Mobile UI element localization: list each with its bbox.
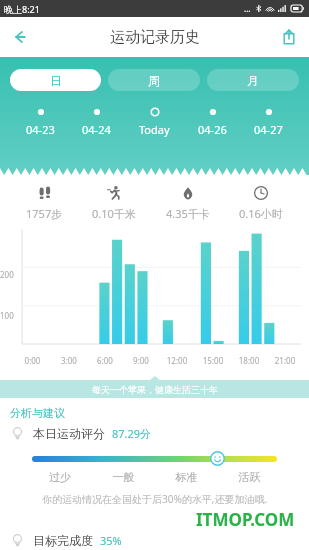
staticText: 标准: [155, 470, 218, 484]
staticText: 6:00: [87, 355, 123, 366]
staticText: 月: [247, 73, 259, 88]
button[interactable]: 0.16小时: [235, 185, 287, 221]
staticText: 0.16小时: [239, 206, 283, 221]
staticText: 200: [0, 269, 14, 280]
staticText: ITMOP.COM: [196, 508, 295, 531]
staticText: 04-23: [26, 122, 55, 137]
staticText: 100: [0, 310, 14, 321]
staticText: 9:00: [123, 355, 159, 366]
staticText: 04-27: [254, 122, 283, 137]
button[interactable]: Today: [137, 107, 172, 137]
staticText: 运动记录历史: [110, 28, 200, 47]
staticText: 04-26: [198, 122, 227, 137]
staticText: 18:00: [231, 355, 267, 366]
button[interactable]: 0.10千米: [88, 185, 140, 221]
staticText: 21:00: [267, 355, 303, 366]
button[interactable]: Share: [269, 17, 309, 57]
staticText: 日: [50, 73, 62, 88]
button[interactable]: 4.35千卡: [162, 185, 214, 221]
staticText: 0.10千米: [92, 206, 136, 221]
staticText: 04-24: [82, 122, 111, 137]
button[interactable]: 04-27: [252, 107, 285, 137]
staticText: Today: [139, 122, 170, 137]
staticText: 晚上8:21: [4, 3, 40, 15]
staticText: 1757步: [26, 206, 63, 221]
button[interactable]: 本日运动评分: [10, 426, 299, 441]
staticText: 活跃: [218, 470, 281, 484]
staticText: 周: [148, 73, 160, 88]
staticText: 15:00: [195, 355, 231, 366]
button[interactable]: 目标完成度: [10, 533, 299, 548]
staticText: 每天一个苹果，健康生活三十年: [92, 384, 218, 395]
staticText: 3:00: [51, 355, 87, 366]
staticText: 0:00: [14, 355, 51, 366]
button[interactable]: 周: [108, 69, 200, 91]
staticText: 本日运动评分: [33, 426, 105, 441]
button[interactable]: 1757步: [22, 185, 67, 221]
button[interactable]: 04-23: [24, 107, 57, 137]
staticText: 分析与建议: [10, 406, 65, 420]
staticText: 目标完成度: [33, 533, 93, 548]
staticText: 87.29分: [112, 426, 152, 441]
button[interactable]: Back: [0, 17, 40, 57]
button[interactable]: 04-24: [80, 107, 113, 137]
staticText: 12:00: [159, 355, 195, 366]
button[interactable]: 月: [207, 69, 299, 91]
staticText: 4.35千卡: [166, 206, 210, 221]
staticText: ...: [244, 3, 251, 14]
staticText: 过少: [28, 470, 92, 484]
button[interactable]: 日: [10, 69, 101, 91]
button[interactable]: 04-26: [196, 107, 229, 137]
staticText: 你的运动情况在全国处于后30%的水平,还要加油哦.: [10, 492, 299, 506]
staticText: 一般: [92, 470, 155, 484]
staticText: 35%: [100, 533, 122, 548]
